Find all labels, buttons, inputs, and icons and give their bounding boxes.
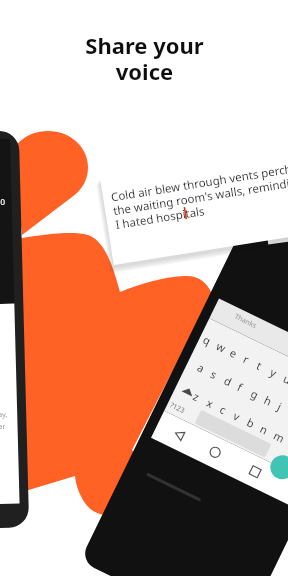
staticText: Share your voice — [85, 30, 204, 87]
